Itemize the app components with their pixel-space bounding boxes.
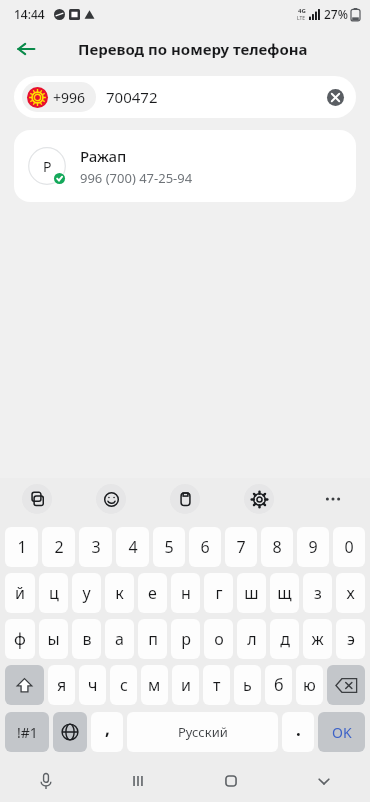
staticText: . <box>296 718 301 741</box>
button[interactable]: Translate <box>0 478 74 520</box>
button[interactable]: л <box>237 619 266 659</box>
button[interactable]: г <box>204 573 233 613</box>
staticText: ш <box>244 582 259 604</box>
button[interactable]: б <box>265 665 292 705</box>
staticText: я <box>57 674 67 696</box>
staticText: 14:44 <box>14 6 45 22</box>
staticText: ц <box>49 582 59 604</box>
button[interactable]: м <box>141 665 168 705</box>
staticText: ю <box>303 674 316 696</box>
button[interactable]: 5 <box>153 527 185 567</box>
button[interactable]: +996 <box>14 76 356 118</box>
button[interactable]: 4 <box>116 527 149 567</box>
staticText: ы <box>47 628 60 650</box>
button[interactable]: More options <box>296 478 370 520</box>
button[interactable]: 1 <box>5 527 38 567</box>
staticText: 3 <box>91 536 101 558</box>
button[interactable]: 0 <box>333 527 365 567</box>
button[interactable]: Shift <box>5 665 44 705</box>
button[interactable]: я <box>48 665 75 705</box>
button[interactable]: о <box>204 619 233 659</box>
staticText: з <box>314 582 322 604</box>
button[interactable]: е <box>138 573 167 613</box>
button[interactable]: ю <box>296 665 323 705</box>
staticText: и <box>181 674 191 696</box>
button[interactable]: Change language <box>53 712 87 752</box>
button[interactable]: р <box>171 619 200 659</box>
button[interactable]: э <box>336 619 365 659</box>
staticText: 6 <box>200 536 210 558</box>
button[interactable]: 2 <box>42 527 75 567</box>
button[interactable]: ф <box>5 619 35 659</box>
staticText: OK <box>332 723 352 742</box>
button[interactable]: . <box>282 712 314 752</box>
button[interactable]: з <box>303 573 332 613</box>
button[interactable]: OK <box>318 712 365 752</box>
button[interactable]: Recent apps <box>92 760 184 802</box>
button[interactable]: п <box>138 619 167 659</box>
button[interactable]: и <box>172 665 199 705</box>
button[interactable]: Hide keyboard <box>277 760 370 802</box>
button[interactable]: у <box>72 573 101 613</box>
button[interactable]: в <box>72 619 101 659</box>
button[interactable]: к <box>105 573 134 613</box>
staticText: Перевод по номеру телефона <box>78 39 308 59</box>
staticText: р <box>181 628 191 650</box>
staticText: э <box>347 628 355 650</box>
button[interactable]: Emoji <box>74 478 148 520</box>
button[interactable]: 7 <box>225 527 257 567</box>
button[interactable]: , <box>91 712 123 752</box>
button[interactable]: щ <box>270 573 299 613</box>
staticText: 1 <box>17 536 27 558</box>
button[interactable]: 8 <box>261 527 293 567</box>
staticText: б <box>274 674 284 696</box>
button[interactable]: й <box>5 573 35 613</box>
button[interactable]: ч <box>79 665 106 705</box>
button[interactable]: ц <box>39 573 68 613</box>
button[interactable]: 9 <box>297 527 329 567</box>
staticText: Р <box>43 157 52 176</box>
staticText: +996 <box>53 88 86 107</box>
staticText: 700472 <box>106 87 322 107</box>
staticText: 5 <box>164 536 174 558</box>
staticText: 9 <box>308 536 318 558</box>
button[interactable]: 3 <box>79 527 112 567</box>
button[interactable]: Clear <box>322 84 348 110</box>
button[interactable]: Р <box>14 130 356 202</box>
button[interactable]: ь <box>234 665 261 705</box>
staticText: 8 <box>272 536 282 558</box>
button[interactable]: ш <box>237 573 266 613</box>
button[interactable]: !#1 <box>5 712 49 752</box>
staticText: с <box>120 674 128 696</box>
button[interactable]: Voice input <box>0 760 92 802</box>
staticText: ь <box>243 674 252 696</box>
button[interactable]: с <box>110 665 137 705</box>
staticText: й <box>15 582 25 604</box>
staticText: т <box>213 674 221 696</box>
staticText: к <box>115 582 124 604</box>
staticText: , <box>105 717 110 740</box>
staticText: е <box>148 582 157 604</box>
button[interactable]: Back <box>8 31 44 67</box>
staticText: 27% <box>324 6 348 22</box>
staticText: в <box>82 628 92 650</box>
button[interactable]: а <box>105 619 134 659</box>
button[interactable]: н <box>171 573 200 613</box>
staticText: п <box>148 628 158 650</box>
button[interactable]: х <box>336 573 365 613</box>
staticText: Ражап <box>80 146 127 166</box>
button[interactable]: +996 <box>22 82 96 112</box>
staticText: м <box>148 674 161 696</box>
staticText: щ <box>277 582 292 604</box>
button[interactable]: 6 <box>189 527 221 567</box>
button[interactable]: ж <box>303 619 332 659</box>
button[interactable]: Backspace <box>327 665 365 705</box>
button[interactable]: д <box>270 619 299 659</box>
button[interactable]: т <box>203 665 230 705</box>
button[interactable]: Русский <box>127 712 278 752</box>
button[interactable]: ы <box>39 619 68 659</box>
staticText: ч <box>88 674 98 696</box>
button[interactable]: Clipboard <box>148 478 222 520</box>
button[interactable]: Settings <box>222 478 296 520</box>
button[interactable]: Home <box>184 760 277 802</box>
